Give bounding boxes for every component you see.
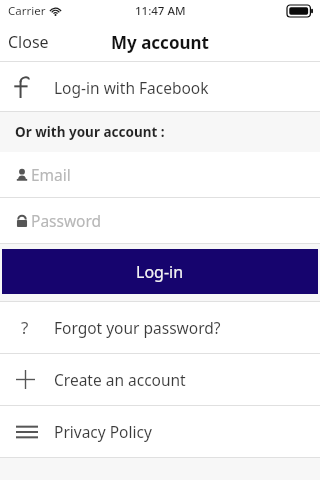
- other: Password: [15, 214, 29, 228]
- staticText: Password: [31, 210, 102, 231]
- button[interactable]: ?: [0, 302, 320, 353]
- other: Email: [15, 168, 29, 182]
- button[interactable]: Log-in: [2, 249, 318, 294]
- staticText: ?: [21, 316, 29, 339]
- staticText: Close: [8, 31, 49, 53]
- staticText: Log-in: [136, 261, 184, 283]
- staticText: Email: [31, 164, 71, 185]
- button[interactable]: Email: [0, 152, 320, 197]
- button[interactable]: Create an account: [0, 354, 320, 405]
- staticText: Forgot your password?: [54, 317, 221, 338]
- staticText: Or with your account :: [15, 123, 165, 141]
- button[interactable]: Close: [0, 25, 59, 59]
- button[interactable]: Log-in with Facebook: [0, 62, 320, 112]
- button[interactable]: Privacy Policy: [0, 406, 320, 457]
- staticText: Carrier: [8, 3, 46, 19]
- staticText: My account: [111, 31, 209, 54]
- button[interactable]: Password: [0, 198, 320, 243]
- staticText: Log-in with Facebook: [54, 77, 209, 98]
- staticText: Privacy Policy: [54, 421, 152, 442]
- staticText: Create an account: [54, 369, 186, 390]
- staticText: 11:47 AM: [135, 3, 186, 19]
